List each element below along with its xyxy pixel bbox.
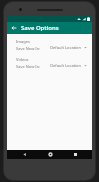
staticText: Save Options <box>21 24 59 32</box>
staticText: Save Now In: <box>16 64 41 69</box>
staticText: Default Location <box>50 45 81 50</box>
button[interactable]: Back <box>16 150 32 159</box>
button[interactable]: Recent apps <box>67 150 83 159</box>
button[interactable]: Save Now In: <box>7 63 92 69</box>
button[interactable]: Save Now In: <box>7 45 92 51</box>
staticText: Save Now In: <box>16 46 41 51</box>
staticText: Default Location <box>50 63 81 68</box>
button[interactable]: Back <box>7 22 21 34</box>
staticText: Images <box>16 39 30 44</box>
button[interactable]: Home <box>42 150 58 159</box>
staticText: Videos <box>16 57 29 62</box>
